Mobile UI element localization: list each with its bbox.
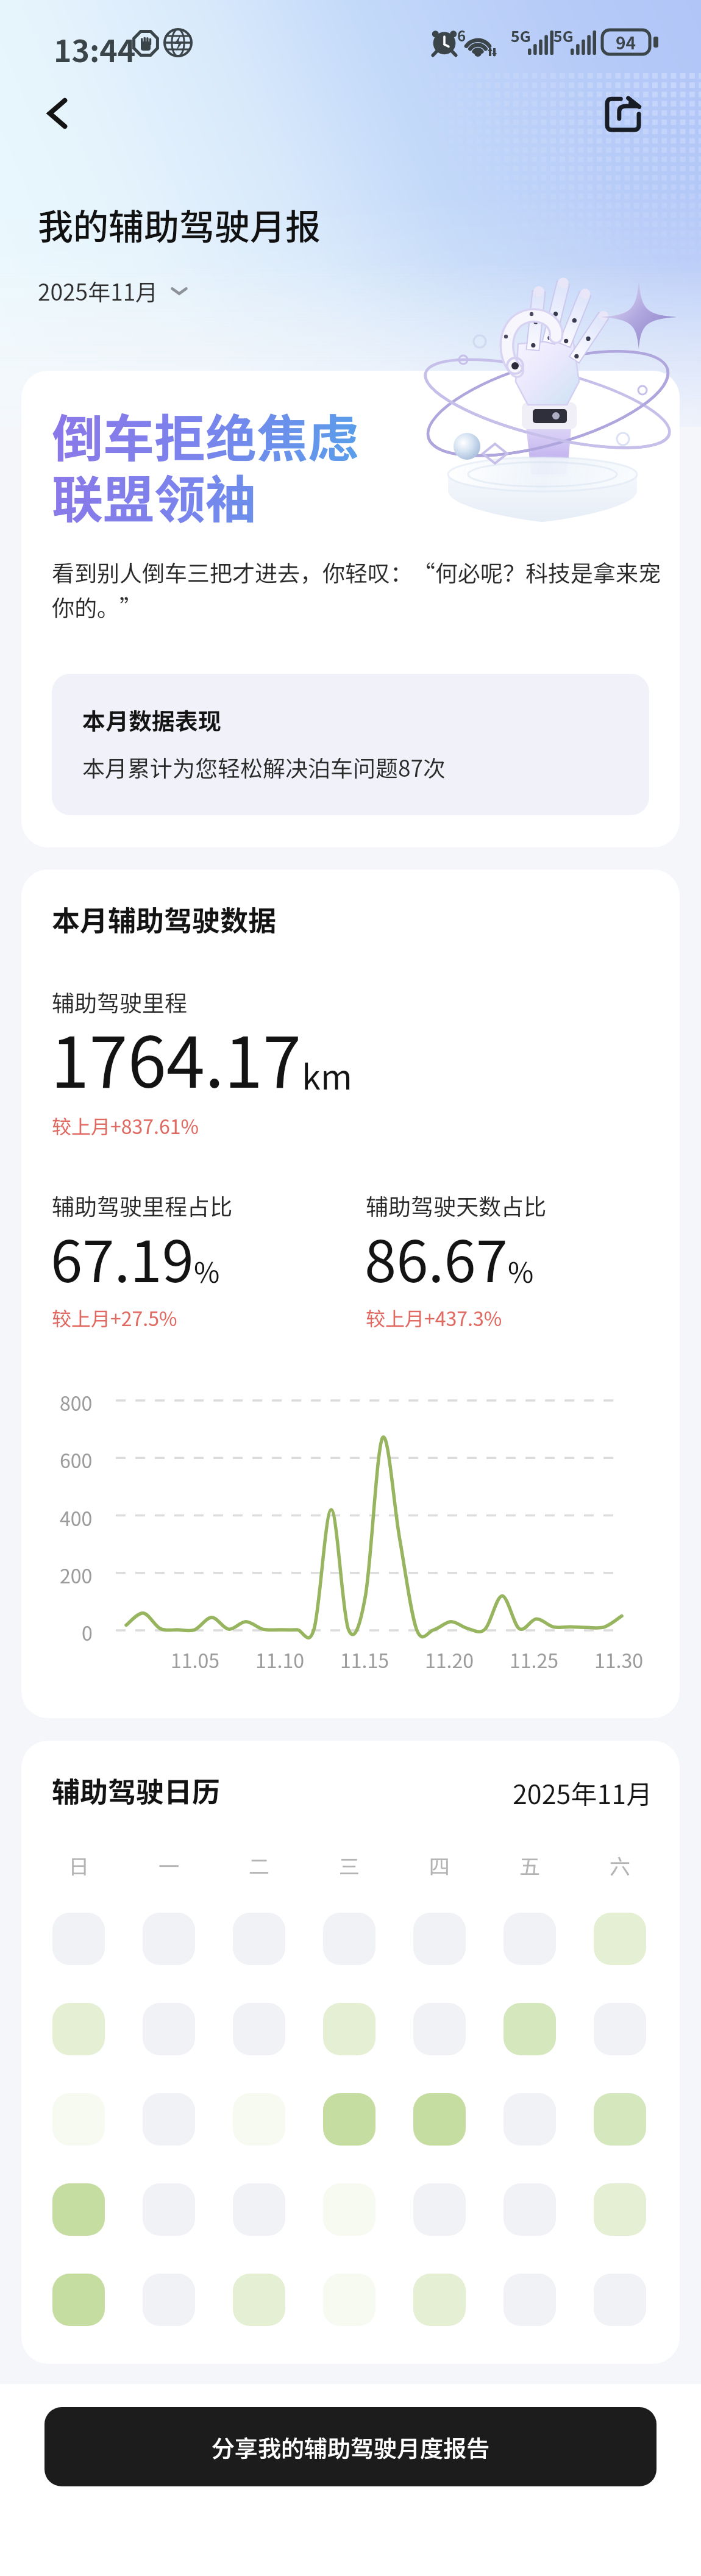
staticText: 1764.17 [51, 1007, 302, 1108]
button[interactable] [323, 2093, 375, 2146]
button[interactable] [413, 2003, 466, 2055]
staticText: 600 [60, 1446, 93, 1474]
staticText: % [194, 1251, 220, 1291]
staticText: 6 [457, 24, 466, 46]
button[interactable] [233, 2183, 285, 2236]
staticText: 我的辅助驾驶月报 [38, 199, 321, 250]
staticText: 分享我的辅助驾驶月度报告 [212, 2430, 490, 2464]
button[interactable] [143, 2274, 195, 2326]
button[interactable] [52, 2274, 105, 2326]
staticText: 五 [519, 1850, 540, 1880]
button[interactable] [594, 2003, 646, 2055]
button[interactable] [143, 2183, 195, 2236]
button[interactable]: Back [29, 85, 85, 141]
staticText: 较上月+27.5% [52, 1304, 177, 1332]
staticText: 辅助驾驶天数占比 [366, 1189, 546, 1222]
button[interactable] [323, 2183, 375, 2236]
button[interactable] [52, 2003, 105, 2055]
button[interactable] [233, 1913, 285, 1965]
staticText: 11.15 [340, 1646, 389, 1674]
button[interactable] [233, 2274, 285, 2326]
staticText: 日 [68, 1850, 89, 1880]
button[interactable] [233, 2093, 285, 2146]
button[interactable] [52, 1913, 105, 1965]
staticText: 11.10 [255, 1646, 304, 1674]
staticText: 三 [339, 1850, 360, 1880]
button[interactable] [504, 2274, 556, 2326]
button[interactable] [594, 2274, 646, 2326]
staticText: 0 [82, 1618, 93, 1646]
staticText: 较上月+437.3% [366, 1304, 502, 1332]
staticText: 400 [60, 1504, 93, 1532]
button[interactable] [504, 2183, 556, 2236]
staticText: 67.19 [51, 1216, 194, 1299]
button[interactable] [52, 2093, 105, 2146]
staticText: 11.30 [594, 1646, 643, 1674]
staticText: 本月累计为您轻松解决泊车问题87次 [82, 751, 446, 783]
staticText: 2025年11月 [38, 274, 158, 307]
button[interactable] [233, 2003, 285, 2055]
button[interactable]: Share [596, 87, 650, 141]
button[interactable]: 分享我的辅助驾驶月度报告 [44, 2407, 657, 2486]
button[interactable] [504, 2093, 556, 2146]
button[interactable] [413, 2274, 466, 2326]
button[interactable]: 2025年11月 [38, 274, 190, 307]
staticText: 200 [60, 1561, 93, 1589]
staticText: 5G [511, 24, 531, 46]
staticText: 一 [158, 1850, 179, 1880]
button[interactable] [52, 2183, 105, 2236]
staticText: 13:44 [54, 27, 136, 71]
button[interactable] [323, 1913, 375, 1965]
button[interactable] [413, 2183, 466, 2236]
button[interactable] [594, 1913, 646, 1965]
button[interactable] [323, 2003, 375, 2055]
staticText: 5G [553, 24, 574, 46]
staticText: 六 [610, 1850, 630, 1880]
staticText: 倒车拒绝焦虑 联盟领袖 [52, 398, 360, 533]
staticText: 11.05 [171, 1646, 219, 1674]
button[interactable] [143, 1913, 195, 1965]
staticText: 本月辅助驾驶数据 [52, 899, 276, 940]
button[interactable] [413, 2093, 466, 2146]
staticText: 看到别人倒车三把才进去，你轻叹：“何必呢？科技是拿来宠你的。” [52, 555, 675, 623]
button[interactable] [594, 2093, 646, 2146]
staticText: 本月数据表现 [82, 703, 222, 737]
staticText: 二 [249, 1850, 269, 1880]
staticText: 2025年11月 [513, 1774, 653, 1811]
button[interactable] [504, 2003, 556, 2055]
staticText: 四 [429, 1850, 450, 1880]
staticText: 辅助驾驶里程 [52, 985, 187, 1018]
staticText: 较上月+837.61% [52, 1111, 199, 1140]
staticText: 11.20 [425, 1646, 474, 1674]
button[interactable] [594, 2183, 646, 2236]
button[interactable] [323, 2274, 375, 2326]
staticText: 辅助驾驶里程占比 [52, 1189, 232, 1222]
button[interactable] [143, 2093, 195, 2146]
staticText: % [508, 1251, 534, 1291]
staticText: km [302, 1050, 352, 1099]
staticText: 辅助驾驶日历 [52, 1770, 220, 1811]
button[interactable] [504, 1913, 556, 1965]
staticText: 86.67 [365, 1216, 508, 1299]
button[interactable] [143, 2003, 195, 2055]
staticText: 800 [60, 1388, 93, 1416]
staticText: 11.25 [510, 1646, 558, 1674]
staticText: 94 [616, 30, 636, 54]
button[interactable] [413, 1913, 466, 1965]
